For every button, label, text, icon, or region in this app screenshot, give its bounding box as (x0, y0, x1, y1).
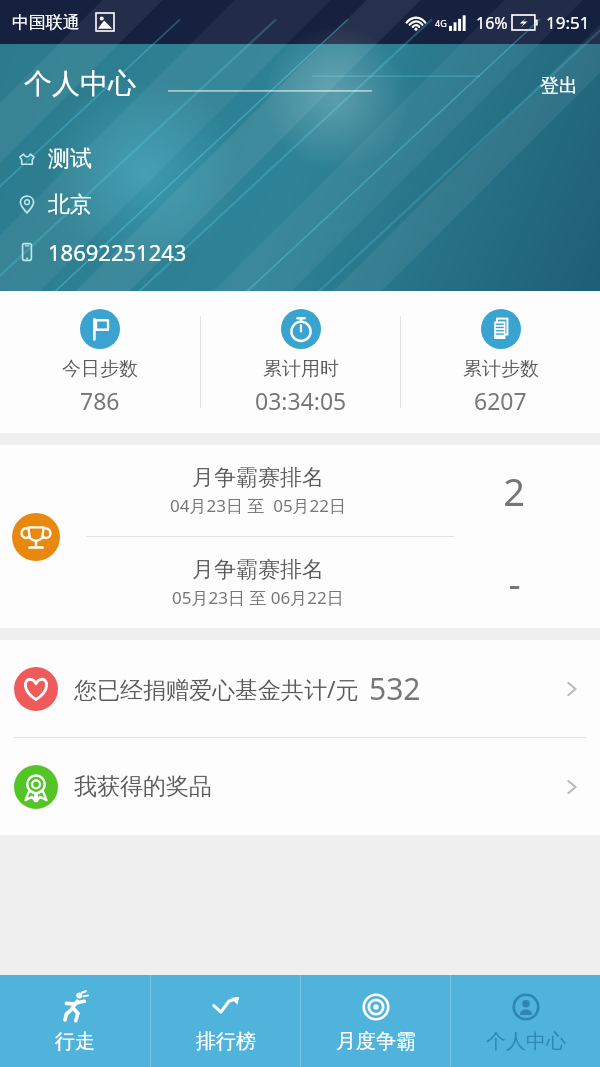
staticText: 04月23日 至 05月22日 (170, 494, 347, 517)
button[interactable]: 累计用时 (201, 291, 400, 433)
staticText: 测试 (48, 145, 92, 173)
staticText: 排行榜 (196, 1029, 256, 1054)
button[interactable]: 月度争霸 (301, 975, 450, 1067)
staticText: 我获得的奖品 (74, 772, 212, 801)
staticText: 北京 (48, 191, 92, 219)
staticText: 03:34:05 (255, 385, 347, 416)
staticText: 您已经捐赠爱心基金共计/元 (74, 673, 359, 704)
staticText: 16% (476, 12, 508, 34)
staticText: 今日步数 (62, 357, 138, 381)
button[interactable]: 排行榜 (151, 975, 300, 1067)
staticText: 行走 (55, 1029, 95, 1054)
staticText: 18692251243 (48, 237, 187, 267)
button[interactable]: 您已经捐赠爱心基金共计/元 (0, 640, 600, 737)
staticText: 个人中心 (486, 1029, 566, 1054)
staticText: 05月23日 至 06月22日 (172, 586, 344, 609)
staticText: 4G (435, 17, 447, 29)
staticText: - (508, 557, 521, 609)
staticText: 19:51 (546, 11, 590, 34)
staticText: 累计用时 (263, 357, 339, 381)
staticText: 累计步数 (463, 357, 539, 381)
button[interactable]: 我获得的奖品 (0, 738, 600, 835)
button[interactable]: 月争霸赛排名 (0, 445, 600, 628)
staticText: 2 (503, 465, 525, 517)
staticText: 月度争霸 (336, 1029, 416, 1054)
staticText: 月争霸赛排名 (192, 464, 324, 492)
button[interactable]: 行走 (0, 975, 150, 1067)
staticText: 个人中心 (24, 66, 136, 101)
button[interactable]: 今日步数 (0, 291, 200, 433)
staticText: 6207 (474, 385, 527, 416)
staticText: 786 (80, 385, 120, 416)
staticText: 月争霸赛排名 (192, 556, 324, 584)
button[interactable]: 个人中心 (451, 975, 600, 1067)
staticText: 中国联通 (12, 12, 80, 33)
button[interactable]: 累计步数 (401, 291, 600, 433)
staticText: 532 (369, 668, 421, 709)
button[interactable]: 登出 (518, 44, 600, 128)
